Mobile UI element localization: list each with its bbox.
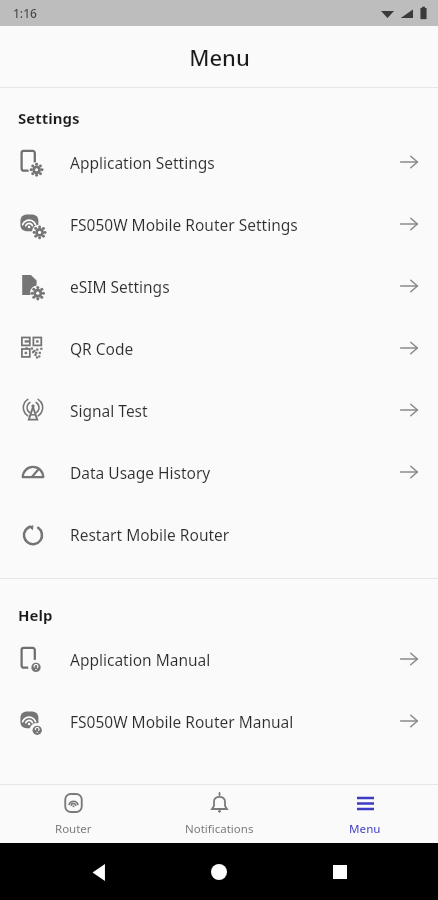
button[interactable]: QR Code bbox=[0, 317, 438, 379]
staticText: Application Manual bbox=[70, 649, 398, 670]
button[interactable]: eSIM Settings bbox=[0, 255, 438, 317]
staticText: eSIM Settings bbox=[70, 276, 398, 297]
staticText: Restart Mobile Router bbox=[70, 524, 420, 545]
staticText: Settings bbox=[18, 108, 80, 128]
staticText: FS050W Mobile Router Settings bbox=[70, 214, 398, 235]
button[interactable]: Home bbox=[196, 849, 242, 895]
button[interactable]: Back bbox=[75, 849, 121, 895]
button[interactable]: Recents bbox=[317, 849, 363, 895]
staticText: Data Usage History bbox=[70, 462, 398, 483]
button[interactable]: FS050W Mobile Router Settings bbox=[0, 193, 438, 255]
staticText: Signal Test bbox=[70, 400, 398, 421]
button[interactable]: Menu bbox=[292, 785, 438, 843]
staticText: Help bbox=[18, 605, 53, 625]
button[interactable]: Data Usage History bbox=[0, 441, 438, 503]
button[interactable]: Application Settings bbox=[0, 131, 438, 193]
button[interactable]: Notifications bbox=[146, 785, 292, 843]
staticText: QR Code bbox=[70, 338, 398, 359]
button[interactable]: Signal Test bbox=[0, 379, 438, 441]
button[interactable]: Application Manual bbox=[0, 628, 438, 690]
staticText: 1:16 bbox=[13, 5, 37, 21]
staticText: FS050W Mobile Router Manual bbox=[70, 711, 398, 732]
staticText: Menu bbox=[189, 42, 250, 72]
staticText: Notifications bbox=[185, 821, 254, 837]
button[interactable]: Restart Mobile Router bbox=[0, 503, 438, 565]
button[interactable]: FS050W Mobile Router Manual bbox=[0, 690, 438, 752]
staticText: Application Settings bbox=[70, 152, 398, 173]
staticText: Router bbox=[55, 821, 92, 837]
staticText: Menu bbox=[349, 821, 381, 837]
button[interactable]: Router bbox=[0, 785, 146, 843]
